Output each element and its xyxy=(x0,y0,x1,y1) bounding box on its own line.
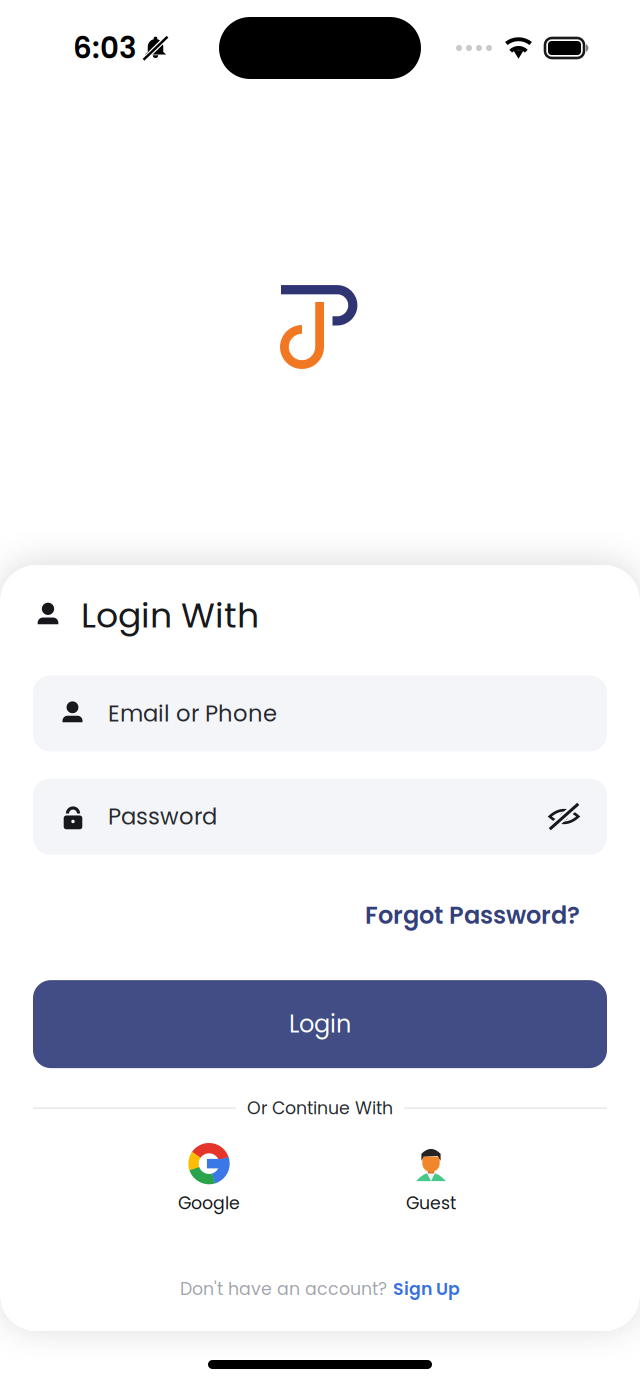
button[interactable]: Login xyxy=(0,980,640,1068)
staticText: Google xyxy=(178,1191,240,1215)
staticText: Or Continue With xyxy=(247,1096,393,1120)
staticText: Password xyxy=(108,801,217,832)
staticText: Email or Phone xyxy=(108,698,277,729)
staticText: Don't have an account? xyxy=(180,1277,387,1301)
staticText: Forgot Password? xyxy=(365,898,580,932)
button[interactable]: Don't have an account? xyxy=(180,1271,460,1307)
button[interactable]: Google xyxy=(149,1142,269,1215)
staticText: 6:03 xyxy=(73,27,137,69)
button[interactable]: Show password xyxy=(537,789,591,843)
staticText: Login xyxy=(289,1007,351,1041)
button[interactable]: Email or Phone xyxy=(0,675,640,751)
staticText: Guest xyxy=(406,1191,456,1215)
button[interactable]: Guest xyxy=(371,1142,491,1215)
button[interactable]: Forgot Password? xyxy=(365,894,580,936)
staticText: Sign Up xyxy=(393,1277,460,1301)
staticText: Login With xyxy=(81,591,259,639)
